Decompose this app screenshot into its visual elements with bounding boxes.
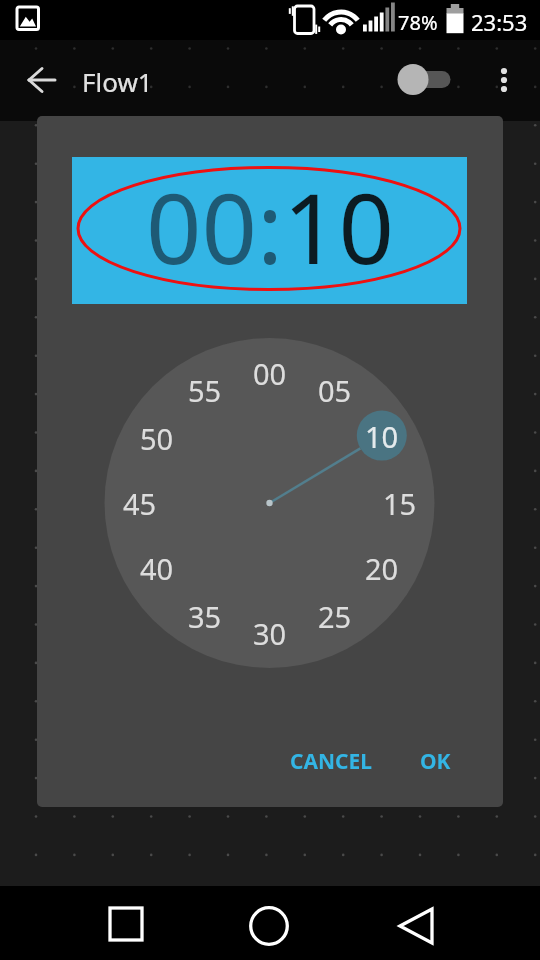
button[interactable] [486, 58, 522, 102]
staticText: 55 [188, 371, 222, 410]
staticText: 15 [383, 484, 417, 523]
staticText: 10 [365, 417, 399, 456]
staticText: 78% [398, 9, 438, 36]
staticText: : [257, 160, 283, 292]
button[interactable] [388, 898, 444, 954]
staticText: OK [420, 747, 451, 776]
staticText: 50 [140, 419, 174, 458]
staticText: 10 [283, 160, 394, 292]
button[interactable] [22, 60, 62, 100]
staticText: 40 [140, 549, 174, 588]
button[interactable] [392, 60, 458, 100]
staticText: 00 [253, 354, 287, 393]
staticText: 25 [318, 597, 352, 636]
staticText: CANCEL [290, 747, 373, 776]
button[interactable]: CANCEL [266, 734, 396, 789]
button[interactable]: OK [395, 734, 475, 789]
staticText: 23:53 [471, 7, 528, 37]
button[interactable] [241, 898, 297, 954]
staticText: 30 [253, 614, 287, 653]
staticText: Flow1 [82, 64, 153, 99]
staticText: 20 [365, 549, 399, 588]
staticText: 35 [188, 597, 222, 636]
button[interactable] [98, 898, 154, 954]
staticText: 05 [318, 371, 352, 410]
staticText: 45 [123, 484, 157, 523]
staticText: 00 [146, 160, 257, 292]
